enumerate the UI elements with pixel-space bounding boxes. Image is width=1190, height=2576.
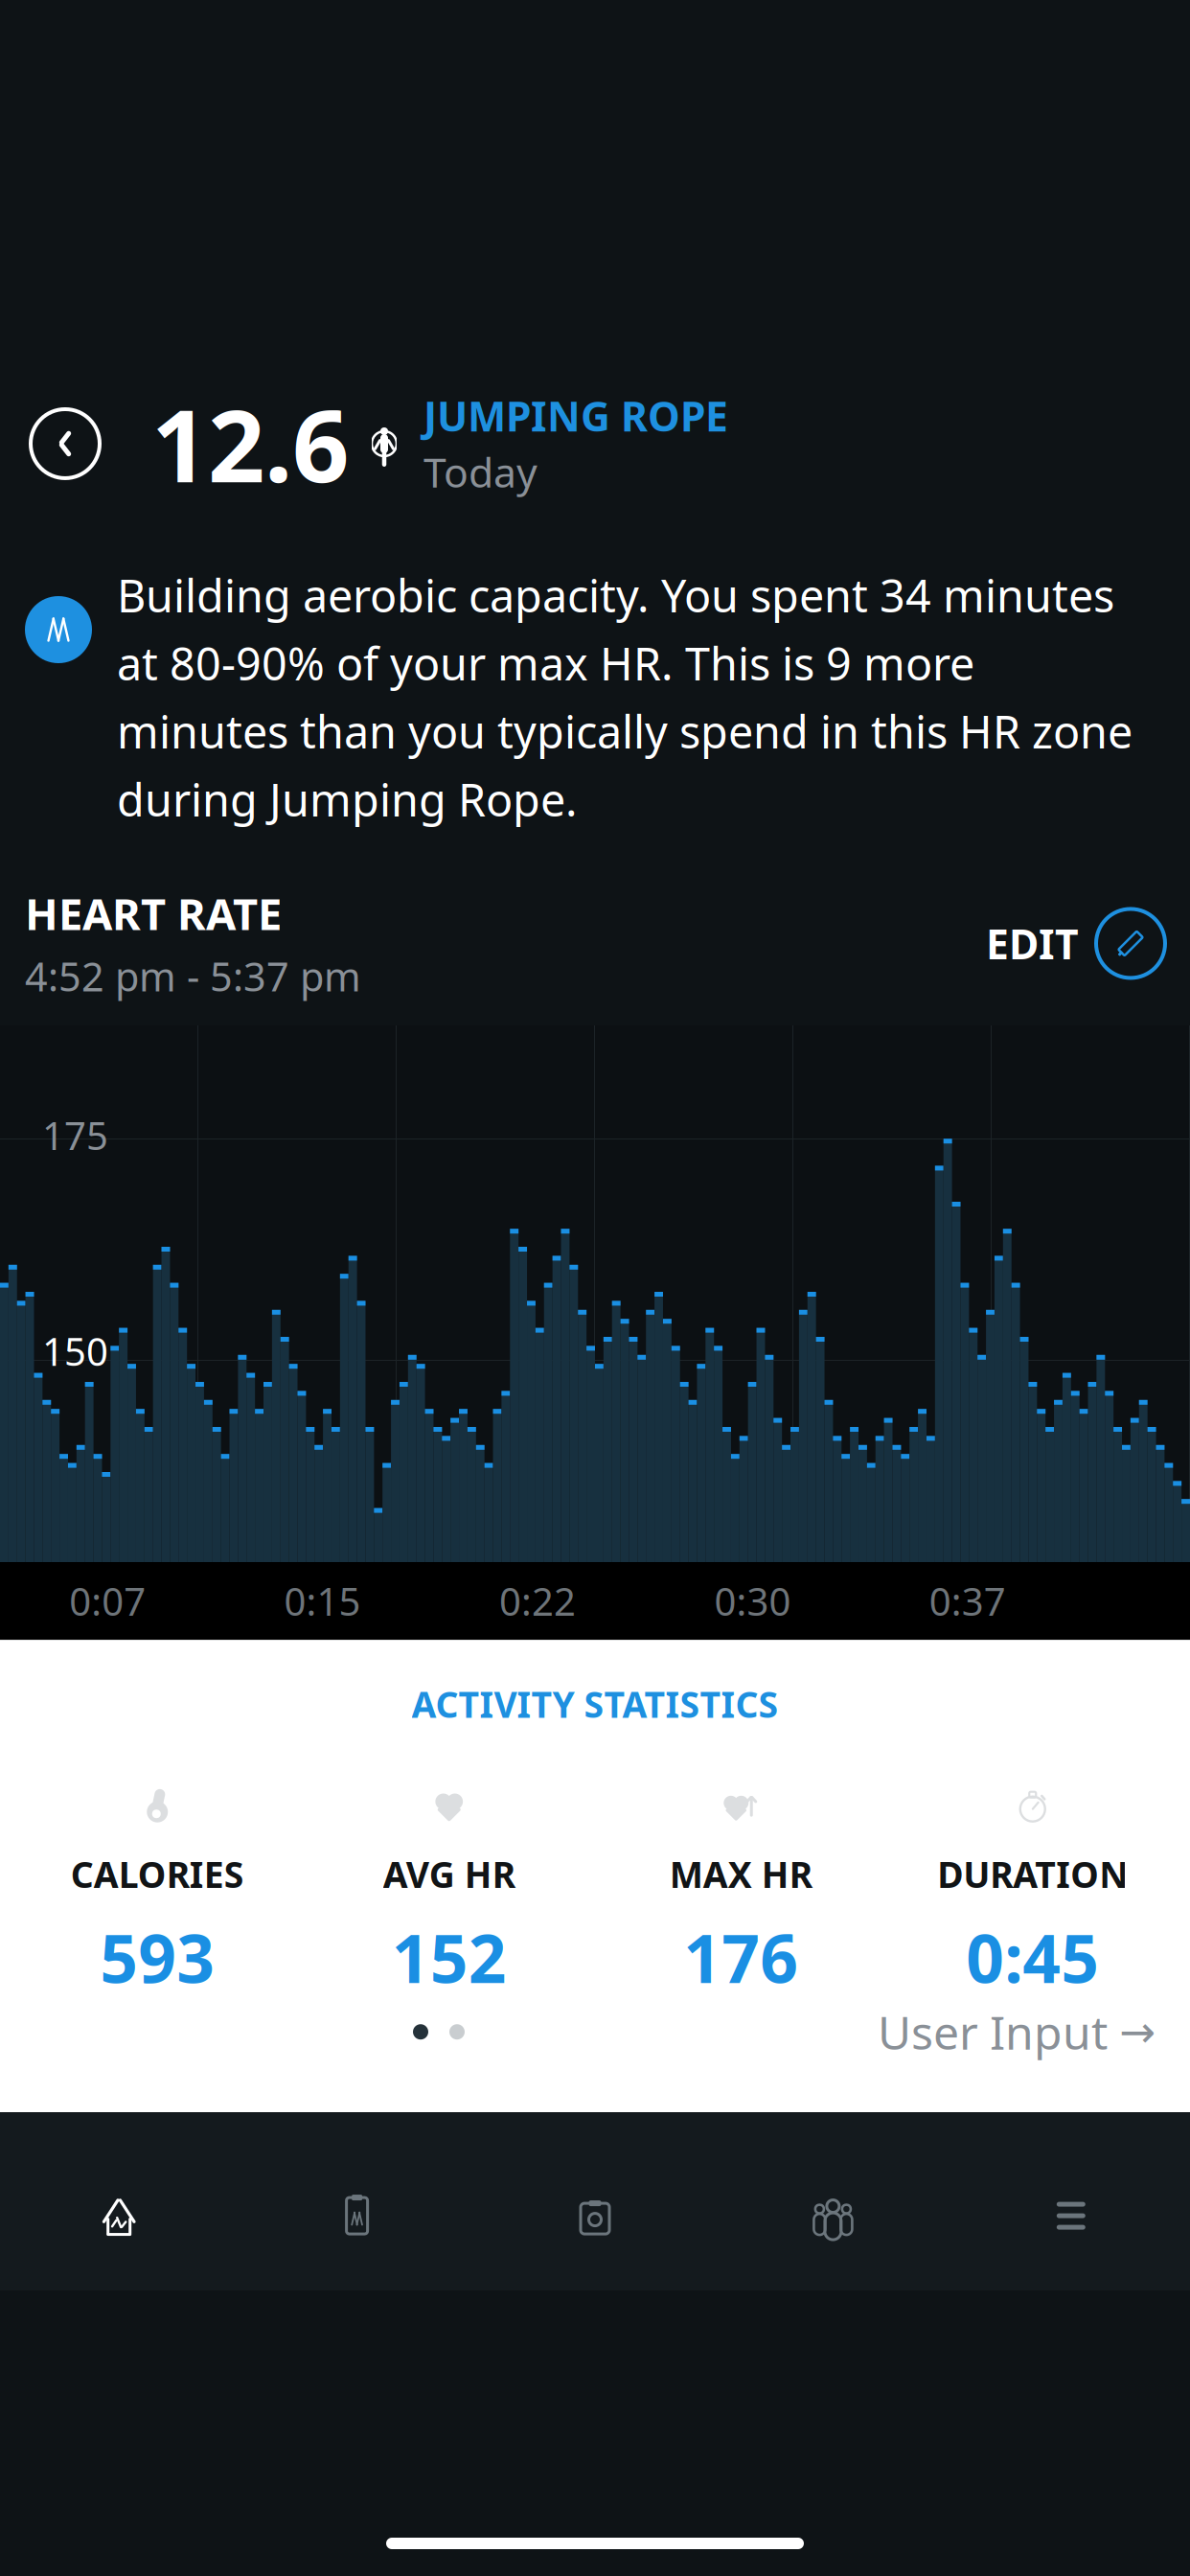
staticText: MAX HR — [670, 1850, 812, 1898]
staticText: 0:37 — [929, 1575, 1006, 1626]
button[interactable]: Home — [0, 2195, 238, 2237]
button[interactable]: EDIT — [986, 909, 1165, 978]
staticText: → — [1119, 2007, 1156, 2057]
staticText: 4:52 pm - 5:37 pm — [25, 950, 361, 1002]
staticText: 175 — [42, 1110, 108, 1161]
staticText: DURATION — [937, 1850, 1128, 1898]
staticText: Building aerobic capacity. You spent 34 … — [117, 565, 1133, 829]
button[interactable]: Workouts — [238, 2195, 476, 2237]
staticText: CALORIES — [71, 1850, 244, 1898]
button[interactable]: Back — [25, 403, 105, 484]
staticText: User Input — [878, 2001, 1108, 2062]
button[interactable]: User Input — [878, 2001, 1156, 2062]
staticText: Today — [423, 445, 538, 499]
staticText: 150 — [42, 1325, 108, 1376]
staticText: 0:22 — [499, 1575, 576, 1626]
button[interactable]: Community — [714, 2195, 952, 2237]
staticText: ACTIVITY STATISTICS — [412, 1680, 778, 1728]
staticText: EDIT — [986, 916, 1079, 971]
button[interactable]: Camera — [476, 2195, 714, 2237]
staticText: 0:07 — [69, 1575, 146, 1626]
staticText: JUMPING ROPE — [423, 388, 728, 443]
staticText: 176 — [683, 1913, 798, 2001]
button[interactable]: Menu — [952, 2195, 1190, 2237]
staticText: AVG HR — [383, 1850, 515, 1898]
staticText: 12.6 — [151, 377, 349, 510]
staticText: 593 — [100, 1913, 215, 2001]
staticText: 0:45 — [966, 1913, 1099, 2001]
staticText: 0:30 — [714, 1575, 791, 1626]
staticText: 152 — [392, 1913, 507, 2001]
staticText: HEART RATE — [25, 884, 282, 942]
staticText: 0:15 — [284, 1575, 361, 1626]
